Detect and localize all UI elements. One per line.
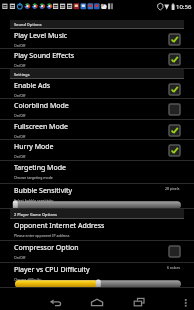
staticText: 2 Player Game Options [14, 212, 57, 217]
staticText: Player vs CPU Difficulty [14, 265, 90, 275]
staticText: Sound Options [14, 22, 42, 27]
staticText: Enable Ads [14, 81, 51, 91]
staticText: On/Off [14, 93, 26, 98]
staticText: On/Off [14, 134, 26, 139]
button[interactable]: Bubble Sensitivity [0, 184, 194, 209]
button[interactable]: More options [172, 288, 194, 310]
button[interactable]: Colorblind Mode [0, 99, 194, 120]
button[interactable]: Back [0, 288, 64, 310]
staticText: Choose targeting mode [14, 175, 53, 180]
staticText: Play Level Music [14, 31, 68, 41]
staticText: Targeting Mode [14, 163, 66, 173]
button[interactable]: Recent apps [122, 288, 172, 310]
button[interactable]: Compressor Option [0, 241, 194, 263]
staticText: Settings [14, 72, 30, 77]
staticText: Select bubble sensitivity [14, 198, 54, 203]
button[interactable]: Home [65, 288, 129, 310]
staticText: 10:56 [176, 3, 192, 11]
staticText: Colorblind Mode [14, 101, 69, 111]
staticText: Play Sound Effects [14, 51, 75, 61]
button[interactable]: Hurry Mode [0, 140, 194, 161]
staticText: On/Off [14, 255, 26, 260]
staticText: Hurry Mode [14, 142, 54, 152]
staticText: Choose difficulty [14, 277, 42, 282]
staticText: Fullscreen Mode [14, 122, 68, 132]
staticText: Bubble Sensitivity [14, 186, 73, 196]
button[interactable]: Play Level Music [0, 29, 194, 49]
staticText: On/Off [14, 154, 26, 159]
staticText: On/Off [14, 63, 26, 68]
staticText: Opponent Internet Address [14, 221, 105, 231]
button[interactable]: Fullscreen Mode [0, 120, 194, 140]
staticText: 28 pixels [165, 186, 180, 191]
staticText: Please enter opponent IP address [14, 233, 70, 238]
button[interactable]: Player vs CPU Difficulty [0, 263, 194, 288]
staticText: 6 colors [167, 265, 180, 270]
button[interactable]: Targeting Mode [0, 161, 194, 184]
staticText: On/Off [14, 113, 26, 118]
button[interactable]: Opponent Internet Address [0, 219, 194, 241]
button[interactable]: Enable Ads [0, 79, 194, 99]
staticText: On/Off [14, 43, 26, 48]
staticText: Compressor Option [14, 243, 79, 253]
button[interactable]: Play Sound Effects [0, 49, 194, 69]
